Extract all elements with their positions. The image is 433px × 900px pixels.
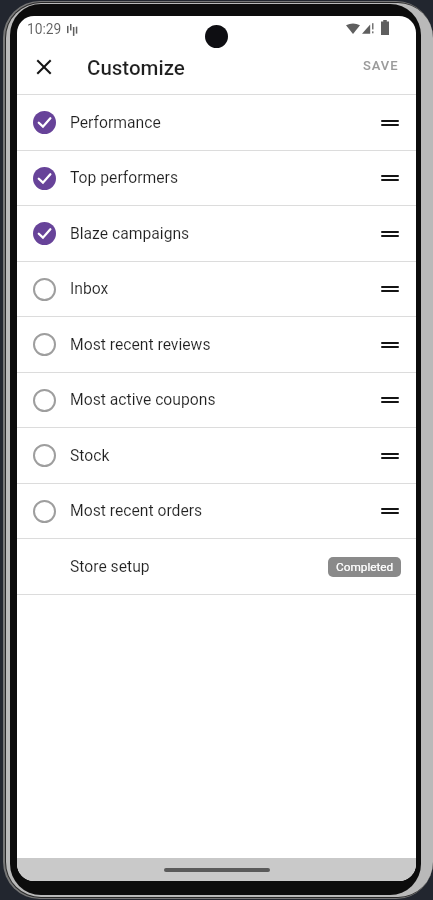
staticText: Most recent orders <box>70 501 203 519</box>
button[interactable]: Blaze campaigns <box>17 206 416 261</box>
button[interactable]: Stock <box>17 428 416 483</box>
button[interactable]: Reorder Most active coupons <box>370 380 410 420</box>
staticText: Top performers <box>70 168 179 186</box>
staticText: Completed <box>336 560 394 574</box>
button[interactable]: Reorder Inbox <box>370 269 410 309</box>
staticText: Stock <box>70 446 110 464</box>
staticText: Store setup <box>70 557 150 575</box>
staticText: Most recent reviews <box>70 335 211 353</box>
button[interactable]: Performance <box>17 95 416 150</box>
button[interactable]: Inbox <box>17 262 416 316</box>
button[interactable]: Most recent orders <box>17 484 416 538</box>
button[interactable]: Reorder Blaze campaigns <box>370 214 410 254</box>
button[interactable]: Reorder Top performers <box>370 158 410 198</box>
button[interactable]: Reorder Performance <box>370 103 410 143</box>
staticText: 10:29 <box>27 21 62 37</box>
button[interactable]: Reorder Most recent reviews <box>370 325 410 365</box>
staticText: Blaze campaigns <box>70 224 190 242</box>
staticText: Most active coupons <box>70 390 216 408</box>
button[interactable]: Top performers <box>17 151 416 205</box>
staticText: SAVE <box>363 58 399 73</box>
button[interactable]: Reorder Most recent orders <box>370 491 410 531</box>
button[interactable]: SAVE <box>351 54 411 85</box>
staticText: Performance <box>70 113 161 131</box>
staticText: Inbox <box>70 279 109 297</box>
button[interactable]: Store setup <box>17 539 416 594</box>
button[interactable]: Reorder Stock <box>370 436 410 476</box>
button[interactable]: Most active coupons <box>17 373 416 427</box>
staticText: Customize <box>87 56 185 80</box>
button[interactable]: Close <box>27 50 61 84</box>
button[interactable]: Most recent reviews <box>17 317 416 372</box>
